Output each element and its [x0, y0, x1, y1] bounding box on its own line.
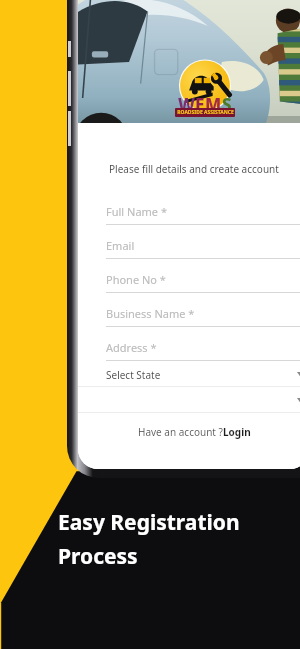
button[interactable]: Full Name *	[78, 191, 300, 225]
button[interactable]: Select State	[78, 361, 300, 387]
staticText: S	[222, 93, 232, 116]
button[interactable]	[78, 387, 300, 413]
staticText: ROADSIDE ASSISTANCE	[177, 109, 234, 116]
button[interactable]: Have an account ?	[78, 420, 300, 444]
button[interactable]: Phone No *	[78, 259, 300, 293]
staticText: Full Name *	[106, 204, 167, 219]
button[interactable]: Address *	[78, 327, 300, 361]
button[interactable]: Business Name *	[78, 293, 300, 327]
staticText: Please fill details and create account	[109, 162, 279, 176]
staticText: Phone No *	[106, 272, 166, 287]
staticText: Select State	[106, 368, 161, 382]
staticText: Email	[106, 238, 135, 253]
staticText: Process	[58, 542, 138, 571]
staticText: Have an account ?	[138, 425, 223, 439]
staticText: E	[195, 93, 205, 116]
staticText: W	[178, 93, 195, 116]
staticText: Business Name *	[106, 306, 195, 321]
button[interactable]: Email	[78, 225, 300, 259]
staticText: Address *	[106, 340, 157, 355]
staticText: Login	[223, 425, 251, 439]
staticText: M	[205, 93, 222, 116]
staticText: Easy Registration	[58, 508, 240, 537]
